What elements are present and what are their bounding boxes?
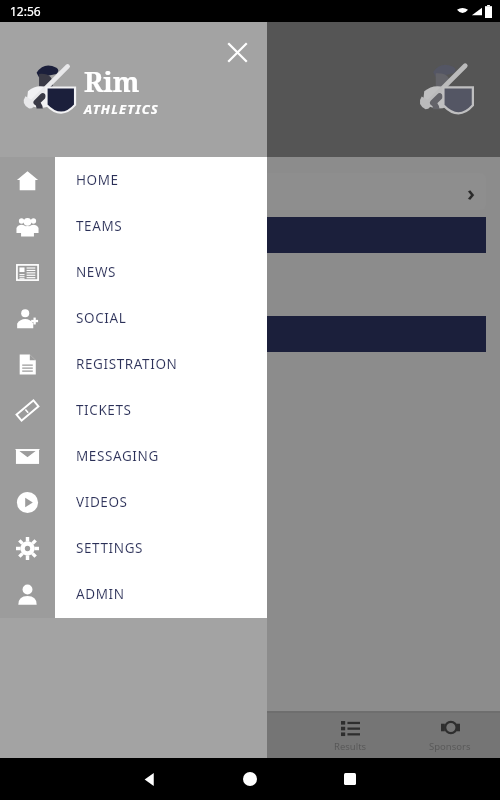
- staticText: NEWS: [76, 263, 117, 281]
- button[interactable]: Sponsors: [400, 713, 500, 758]
- button[interactable]: Messaging: [0, 433, 55, 479]
- staticText: Media: [22, 461, 60, 479]
- staticText: Rim: [86, 52, 160, 101]
- button[interactable]: VIDEOS: [55, 479, 267, 525]
- button[interactable]: Home: [200, 758, 300, 800]
- staticText: VIDEOS: [76, 493, 128, 511]
- button[interactable]: Home: [0, 157, 55, 203]
- button[interactable]: Media: [14, 357, 134, 505]
- staticText: HOME: [76, 171, 119, 189]
- button[interactable]: Admin: [0, 571, 55, 617]
- button[interactable]: Back: [100, 758, 200, 800]
- button[interactable]: Roster: [200, 713, 300, 758]
- button[interactable]: Videos: [0, 479, 55, 525]
- staticText: News: [30, 534, 61, 550]
- staticText: ADMIN: [76, 585, 125, 603]
- button[interactable]: News: [14, 527, 76, 557]
- staticText: SETTINGS: [76, 539, 144, 557]
- staticText: Upcoming Events: [24, 226, 146, 245]
- button[interactable]: Social: [0, 295, 55, 341]
- staticText: Please check back later!: [14, 263, 153, 280]
- button[interactable]: Settings: [0, 525, 55, 571]
- staticText: Rim: [84, 63, 140, 100]
- button[interactable]: TICKETS: [55, 387, 267, 433]
- button[interactable]: REGISTRATION: [55, 341, 267, 387]
- button[interactable]: ADMIN: [55, 571, 267, 617]
- button[interactable]: SOCIAL: [55, 295, 267, 341]
- staticText: ›: [467, 177, 476, 207]
- button[interactable]: MESSAGING: [55, 433, 267, 479]
- staticText: Documents, and Forms: [24, 184, 156, 200]
- button[interactable]: Tickets: [0, 387, 55, 433]
- staticText: 12:56: [10, 3, 41, 19]
- staticText: Results: [334, 740, 367, 753]
- staticText: MESSAGING: [76, 447, 159, 465]
- button[interactable]: TEAMS: [55, 203, 267, 249]
- staticText: TEAMS: [76, 217, 123, 235]
- staticText: TICKETS: [76, 401, 132, 419]
- button[interactable]: Registration: [0, 341, 55, 387]
- button[interactable]: Recent apps: [300, 758, 400, 800]
- button[interactable]: Results: [300, 713, 400, 758]
- button[interactable]: Teams: [0, 203, 55, 249]
- button[interactable]: NEWS: [55, 249, 267, 295]
- staticText: ATHLETICS: [84, 100, 159, 118]
- button[interactable]: News: [0, 249, 55, 295]
- staticText: ATHLETICS: [86, 101, 194, 127]
- button[interactable]: HOME: [55, 157, 267, 203]
- button[interactable]: Close menu: [219, 34, 255, 70]
- staticText: REGISTRATION: [76, 355, 178, 373]
- staticText: SOCIAL: [76, 309, 127, 327]
- button[interactable]: Documents, and Forms: [14, 173, 486, 210]
- button[interactable]: SETTINGS: [55, 525, 267, 571]
- staticText: Sponsors: [429, 740, 471, 753]
